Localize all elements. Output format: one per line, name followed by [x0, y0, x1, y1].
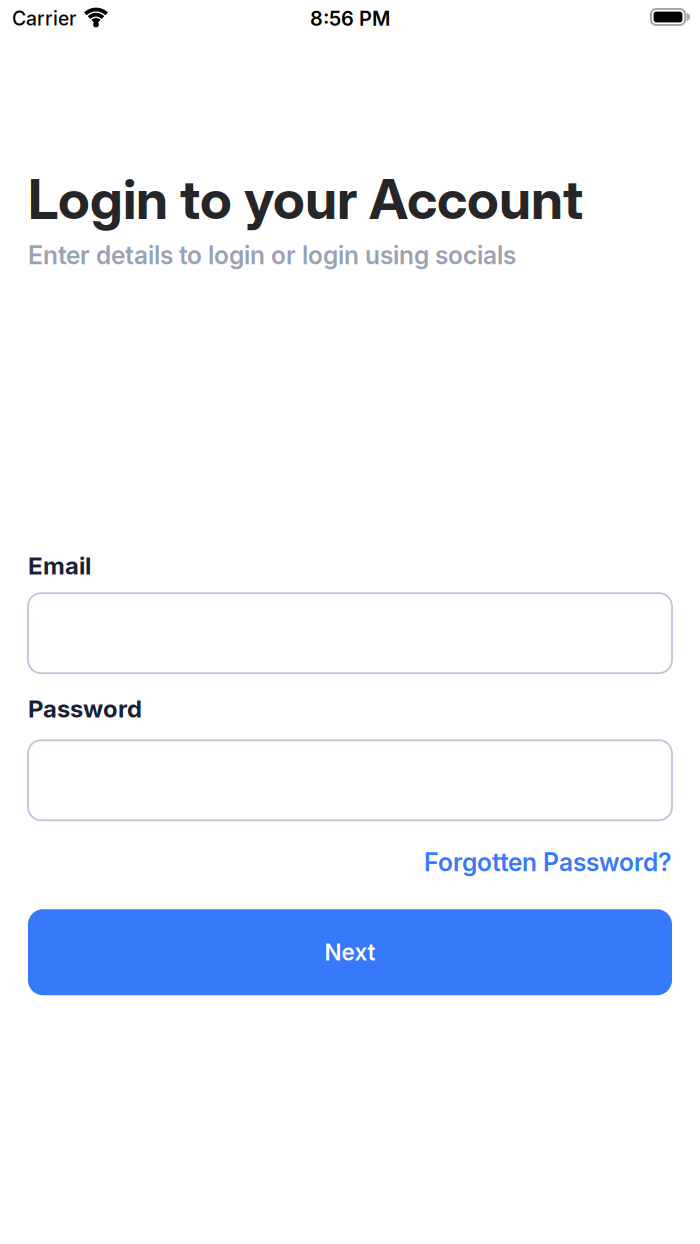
- button[interactable]: Password: [28, 740, 672, 820]
- staticText: Enter details to login or login using so…: [28, 240, 516, 270]
- staticText: Login to your Account: [28, 166, 583, 232]
- staticText: Forgotten Password?: [424, 847, 672, 877]
- staticText: 8:56 PM: [310, 6, 390, 31]
- staticText: Email: [28, 551, 91, 580]
- staticText: Next: [324, 938, 375, 966]
- button[interactable]: Forgotten Password?: [424, 847, 672, 877]
- button[interactable]: Next: [28, 909, 672, 995]
- button[interactable]: Email: [28, 593, 672, 673]
- staticText: Password: [28, 694, 142, 723]
- staticText: Carrier: [12, 7, 76, 30]
